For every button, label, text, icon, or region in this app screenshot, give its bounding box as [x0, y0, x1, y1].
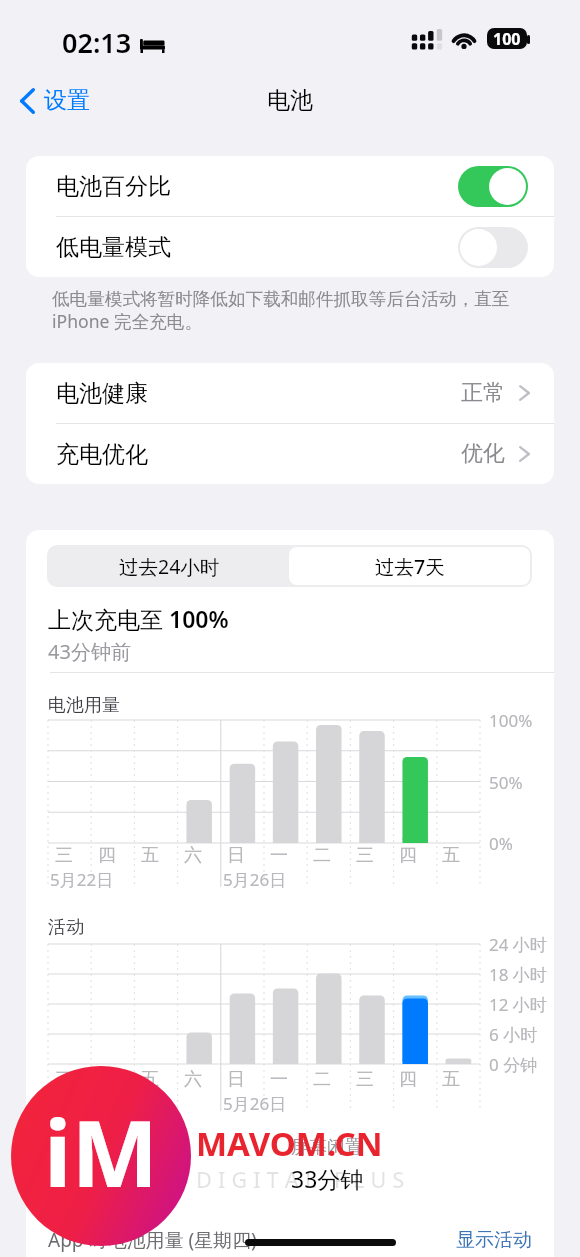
staticText: 0% [489, 832, 513, 855]
button[interactable]: 过去7天 [289, 547, 530, 585]
button[interactable]: 电池百分比 [26, 156, 554, 216]
staticText: 一 [270, 844, 288, 867]
staticText: 5月22日 [50, 868, 114, 891]
staticText: 屏幕闲置 [291, 1136, 363, 1159]
staticText: 100 [493, 28, 521, 49]
staticText: D I G I T A L P L U S [196, 1164, 405, 1194]
staticText: iM [44, 1089, 159, 1214]
staticText: 33分钟 [291, 1163, 364, 1194]
staticText: 12 小时 [489, 993, 547, 1016]
staticText: 02:13 [62, 24, 132, 61]
staticText: 电池健康 [56, 379, 148, 408]
staticText: 五 [442, 844, 460, 867]
staticText: 四 [399, 1068, 417, 1091]
staticText: 59分钟 [48, 1163, 121, 1194]
staticText: 43分钟前 [48, 638, 131, 665]
button[interactable]: 电池健康 [26, 363, 554, 423]
staticText: 五 [141, 1068, 159, 1091]
staticText: 五 [141, 844, 159, 867]
staticText: 电池 [267, 86, 313, 115]
staticText: 六 [184, 844, 202, 867]
staticText: 二 [313, 1068, 331, 1091]
staticText: 低电量模式将暂时降低如下载和邮件抓取等后台活动，直至 iPhone 完全充电。 [52, 288, 552, 333]
staticText: 0 分钟 [489, 1053, 538, 1076]
staticText: 上次充电至 100% [48, 603, 229, 634]
staticText: 正常 [461, 379, 505, 407]
staticText: 三 [356, 844, 374, 867]
staticText: 充电优化 [56, 440, 148, 469]
button[interactable]: 显示活动 [456, 1228, 532, 1252]
staticText: 日 [227, 1068, 245, 1091]
staticText: 优化 [461, 440, 505, 468]
staticText: 50% [489, 771, 523, 794]
staticText: 电池用量 [48, 694, 120, 717]
staticText: MAVOM.CN [196, 1121, 383, 1166]
staticText: 活动 [48, 916, 84, 939]
staticText: 四 [98, 844, 116, 867]
staticText: 三 [356, 1068, 374, 1091]
staticText: 二 [313, 844, 331, 867]
staticText: 电池百分比 [56, 172, 171, 201]
staticText: 100% [489, 709, 533, 732]
staticText: App 时电池用量 (星期四) [48, 1227, 257, 1253]
button[interactable]: 过去24小时 [49, 547, 289, 585]
staticText: 四 [399, 844, 417, 867]
staticText: 一 [270, 1068, 288, 1091]
button[interactable]: 低电量模式 [26, 217, 554, 277]
staticText: 5月26日 [223, 1092, 287, 1115]
staticText: 过去7天 [375, 553, 445, 580]
staticText: 设置 [44, 86, 90, 115]
button[interactable]: 充电优化 [26, 424, 554, 484]
staticText: 五 [442, 1068, 460, 1091]
staticText: 低电量模式 [56, 233, 171, 262]
staticText: 三 [55, 844, 73, 867]
staticText: 日 [227, 844, 245, 867]
staticText: 三 [55, 1068, 73, 1091]
staticText: 六 [184, 1068, 202, 1091]
staticText: 6 小时 [489, 1023, 538, 1046]
staticText: 屏幕开启 [48, 1136, 120, 1159]
staticText: 过去24小时 [119, 553, 220, 580]
button[interactable]: 设置 [14, 82, 100, 119]
staticText: 5月26日 [223, 868, 287, 891]
staticText: 18 小时 [489, 963, 547, 986]
staticText: 24 小时 [489, 933, 547, 956]
